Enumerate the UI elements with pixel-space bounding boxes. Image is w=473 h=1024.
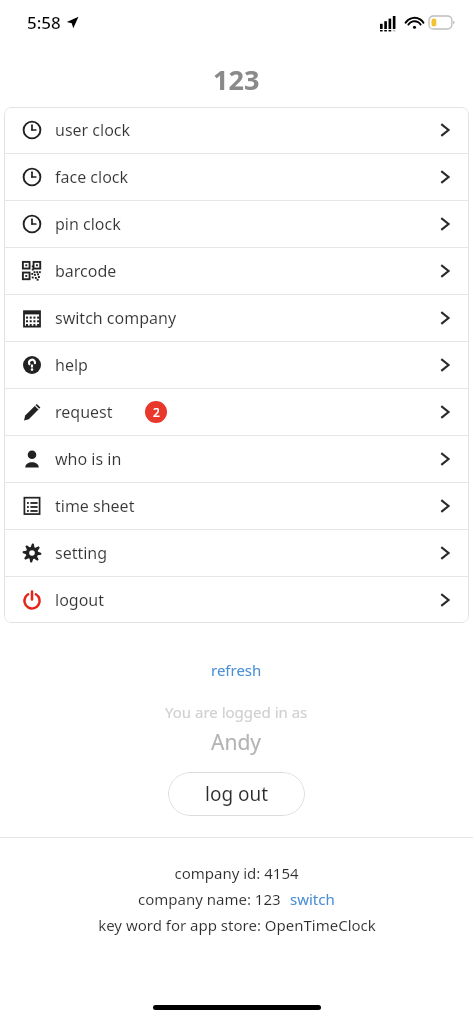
staticText: Andy bbox=[211, 728, 262, 757]
button[interactable]: help bbox=[4, 342, 469, 388]
button[interactable]: logout bbox=[4, 577, 469, 623]
staticText: logout bbox=[55, 589, 104, 611]
button[interactable]: user clock bbox=[4, 107, 469, 153]
staticText: setting bbox=[55, 542, 108, 564]
button[interactable]: time sheet bbox=[4, 483, 469, 529]
staticText: key word for app store: OpenTimeClock bbox=[98, 915, 376, 935]
staticText: who is in bbox=[55, 448, 122, 470]
button[interactable]: face clock bbox=[4, 154, 469, 200]
button[interactable]: pin clock bbox=[4, 201, 469, 247]
button[interactable]: switch company bbox=[4, 295, 469, 341]
button[interactable]: switch bbox=[290, 889, 335, 909]
staticText: pin clock bbox=[55, 213, 121, 235]
staticText: user clock bbox=[55, 119, 131, 141]
staticText: face clock bbox=[55, 166, 129, 188]
staticText: company id: 4154 bbox=[174, 863, 299, 883]
staticText: 5:58 bbox=[27, 11, 61, 34]
staticText: refresh bbox=[211, 660, 262, 680]
button[interactable]: setting bbox=[4, 530, 469, 576]
staticText: log out bbox=[205, 781, 269, 807]
staticText: switch bbox=[290, 889, 335, 909]
staticText: request bbox=[55, 401, 113, 423]
button[interactable]: log out bbox=[168, 772, 305, 816]
staticText: switch company bbox=[55, 307, 177, 329]
button[interactable]: request bbox=[4, 389, 469, 435]
button[interactable]: refresh bbox=[199, 656, 274, 684]
staticText: barcode bbox=[55, 260, 117, 282]
staticText: 2 bbox=[153, 404, 160, 420]
staticText: time sheet bbox=[55, 495, 135, 517]
button[interactable]: who is in bbox=[4, 436, 469, 482]
staticText: company name: 123 bbox=[138, 889, 281, 909]
staticText: You are logged in as bbox=[165, 702, 308, 722]
staticText: help bbox=[55, 354, 88, 376]
staticText: 123 bbox=[213, 61, 260, 98]
button[interactable]: barcode bbox=[4, 248, 469, 294]
